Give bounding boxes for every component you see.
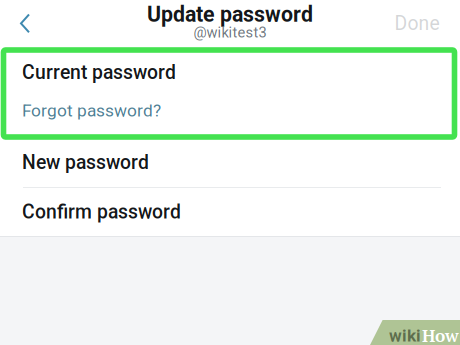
staticText: New password xyxy=(22,151,149,174)
staticText: Done xyxy=(394,12,439,35)
staticText: Current password xyxy=(22,61,176,84)
staticText: Forgot password? xyxy=(22,100,161,121)
button[interactable]: Back xyxy=(0,1,50,46)
button[interactable]: Current password xyxy=(0,45,460,100)
staticText: wiki xyxy=(389,325,421,345)
staticText: Update password xyxy=(147,2,313,27)
staticText: Confirm password xyxy=(22,201,181,223)
button[interactable]: Confirm password xyxy=(0,188,460,236)
staticText: How xyxy=(422,324,459,345)
staticText: @wikitest3 xyxy=(193,24,266,41)
button[interactable]: Forgot password? xyxy=(0,100,460,121)
button[interactable]: New password xyxy=(0,138,460,187)
button[interactable]: Done xyxy=(374,1,460,46)
